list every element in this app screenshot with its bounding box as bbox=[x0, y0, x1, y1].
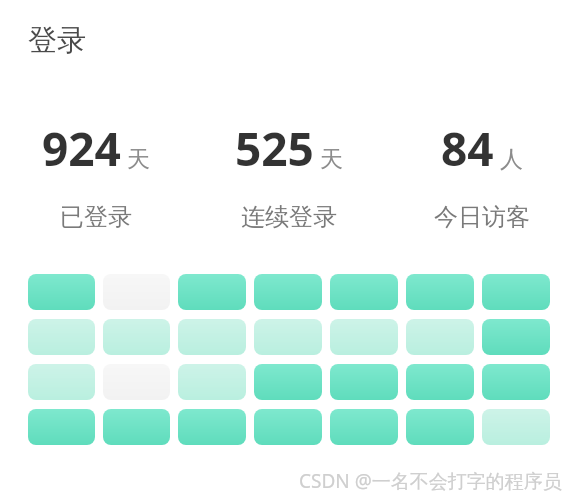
staticText: 84 bbox=[441, 117, 494, 180]
button[interactable] bbox=[406, 364, 474, 400]
button[interactable] bbox=[254, 409, 322, 445]
button[interactable] bbox=[28, 364, 95, 400]
staticText: CSDN @一名不会打字的程序员 bbox=[299, 468, 562, 494]
staticText: 已登录 bbox=[60, 202, 132, 232]
button[interactable] bbox=[406, 409, 474, 445]
button[interactable] bbox=[330, 364, 398, 400]
button[interactable] bbox=[178, 319, 246, 355]
button[interactable] bbox=[330, 274, 398, 310]
button[interactable] bbox=[482, 364, 550, 400]
button[interactable] bbox=[330, 409, 398, 445]
staticText: 525 bbox=[235, 117, 314, 180]
staticText: 天 bbox=[127, 145, 150, 174]
button[interactable] bbox=[254, 274, 322, 310]
staticText: 连续登录 bbox=[241, 202, 337, 232]
button[interactable] bbox=[482, 274, 550, 310]
staticText: 登录 bbox=[28, 22, 86, 59]
staticText: 今日访客 bbox=[434, 202, 530, 232]
button[interactable] bbox=[482, 409, 550, 445]
staticText: 人 bbox=[500, 145, 523, 174]
button[interactable] bbox=[254, 319, 322, 355]
button[interactable] bbox=[254, 364, 322, 400]
button[interactable] bbox=[406, 319, 474, 355]
button[interactable] bbox=[28, 274, 95, 310]
button[interactable] bbox=[28, 319, 95, 355]
staticText: 924 bbox=[42, 117, 121, 180]
button[interactable]: 924 bbox=[0, 117, 192, 232]
button[interactable] bbox=[178, 364, 246, 400]
button[interactable]: 84 bbox=[385, 117, 578, 232]
button[interactable] bbox=[482, 319, 550, 355]
staticText: 天 bbox=[320, 145, 343, 174]
button[interactable] bbox=[178, 409, 246, 445]
button[interactable] bbox=[103, 409, 170, 445]
button[interactable] bbox=[103, 319, 170, 355]
button[interactable] bbox=[28, 409, 95, 445]
button[interactable] bbox=[330, 319, 398, 355]
button[interactable] bbox=[406, 274, 474, 310]
button[interactable] bbox=[178, 274, 246, 310]
button[interactable]: 525 bbox=[192, 117, 385, 232]
